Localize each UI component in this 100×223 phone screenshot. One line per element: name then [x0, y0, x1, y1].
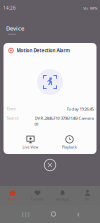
staticText: Home — [8, 197, 17, 201]
staticText: Me — [85, 197, 90, 201]
button[interactable]: Close — [41, 156, 59, 174]
button[interactable]: Playback — [54, 135, 84, 150]
staticText: 14:26 — [3, 5, 16, 11]
staticText: DVR-2846-F1(/37061146) Camera 01 — [34, 115, 93, 127]
staticText: Today 19:26:45 — [66, 106, 93, 112]
button[interactable]: Message — [50, 186, 75, 205]
staticText: Message — [56, 197, 69, 201]
button[interactable]: Live View — [15, 135, 45, 150]
staticText: Playback — [62, 145, 77, 150]
staticText: ||| — [21, 210, 30, 218]
staticText: Live View — [22, 145, 38, 150]
staticText: Motion Detection Alarm — [16, 47, 69, 54]
staticText: Source — [6, 115, 18, 121]
staticText: ‹ — [77, 209, 79, 219]
staticText: Device — [6, 24, 24, 32]
button[interactable]: Favorite — [25, 186, 50, 205]
button[interactable]: Home — [0, 186, 25, 205]
staticText: 5G 84% — [83, 5, 97, 11]
button[interactable]: Me — [75, 186, 100, 205]
staticText: Time — [6, 106, 15, 111]
